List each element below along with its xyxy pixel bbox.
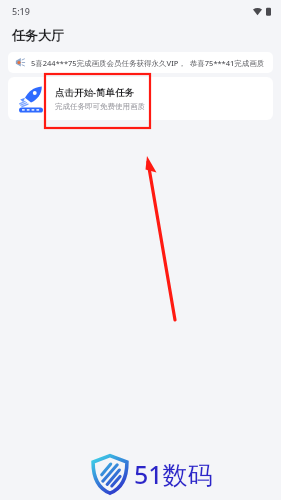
staticText: 任务大厅 [12, 27, 64, 43]
staticText: 完成任务即可免费使用画质 [55, 102, 145, 111]
staticText: 51数码 [134, 457, 213, 491]
staticText: 点击开始-简单任务 [55, 86, 135, 99]
other: 任务图标 [16, 84, 46, 114]
staticText: 5:19 [12, 5, 30, 17]
button[interactable]: 任务图标 [8, 77, 273, 120]
staticText: 5喜244***75完成画质会员任务获得永久VIP， 恭喜75***41完成画质… [31, 58, 268, 68]
button[interactable]: 5喜244***75完成画质会员任务获得永久VIP， 恭喜75***41完成画质… [8, 52, 273, 73]
